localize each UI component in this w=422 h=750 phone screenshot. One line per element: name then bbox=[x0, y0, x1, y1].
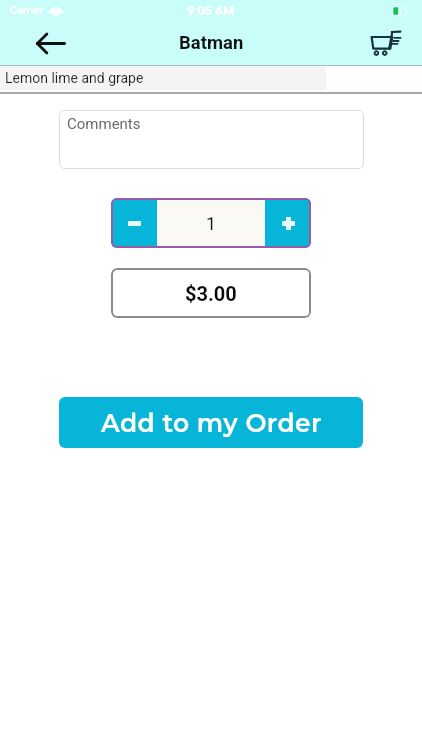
button[interactable]: Decrease quantity bbox=[111, 198, 157, 248]
staticText: $3.00 bbox=[185, 282, 237, 305]
staticText: Batman bbox=[179, 32, 244, 54]
staticText: 1 bbox=[206, 213, 217, 234]
button[interactable]: Shopping cart bbox=[367, 24, 405, 62]
button[interactable]: $3.00 bbox=[111, 268, 311, 318]
staticText: Lemon lime and grape bbox=[5, 70, 144, 86]
staticText: Add to my Order bbox=[101, 408, 322, 438]
staticText: 9:05 AM bbox=[187, 3, 235, 18]
button[interactable]: Comments bbox=[59, 110, 364, 169]
staticText: Comments bbox=[67, 115, 141, 133]
staticText: Carrier bbox=[10, 4, 44, 17]
button[interactable]: Increase quantity bbox=[265, 198, 311, 248]
button[interactable]: Add to my Order bbox=[59, 397, 363, 448]
button[interactable]: Back bbox=[31, 23, 71, 63]
